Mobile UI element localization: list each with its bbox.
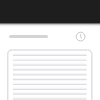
button[interactable]	[9, 35, 48, 38]
button[interactable]: Recent	[73, 29, 89, 45]
